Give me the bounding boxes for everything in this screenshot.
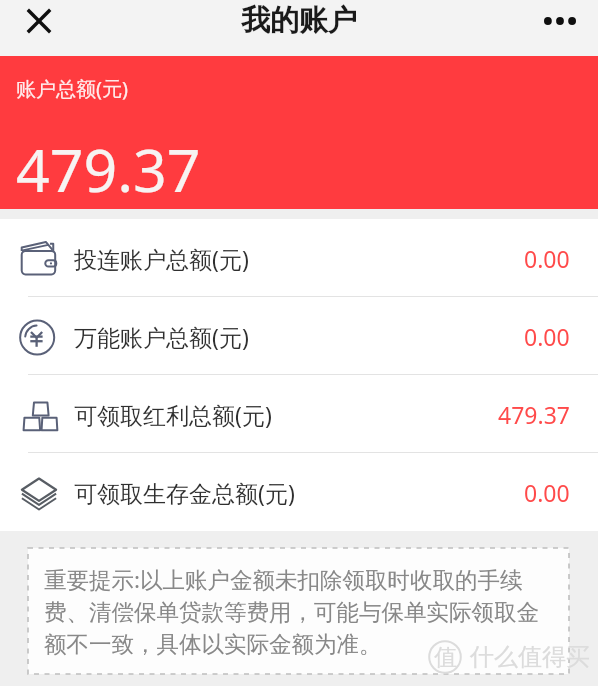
button[interactable]: 可领取生存金总额(元) xyxy=(0,453,598,531)
staticText: 万能账户总额(元) xyxy=(74,321,249,352)
staticText: 可领取红利总额(元) xyxy=(74,399,272,430)
staticText: 可领取生存金总额(元) xyxy=(74,477,295,508)
staticText: 479.37 xyxy=(16,129,201,209)
staticText: 479.37 xyxy=(498,399,570,430)
staticText: 值 xyxy=(434,643,457,672)
staticText: 重要提示:以上账户金额未扣除领取时收取的手续费、清偿保单贷款等费用，可能与保单实… xyxy=(44,564,546,659)
staticText: 我的账户 xyxy=(241,2,357,39)
staticText: 0.00 xyxy=(524,243,570,274)
staticText: 0.00 xyxy=(524,477,570,508)
button[interactable]: Close xyxy=(17,0,60,41)
staticText: 0.00 xyxy=(524,321,570,352)
staticText: 什么值得买 xyxy=(470,642,590,672)
button[interactable]: 投连账户总额(元) xyxy=(0,219,598,297)
staticText: 账户总额(元) xyxy=(16,75,128,102)
staticText: 投连账户总额(元) xyxy=(74,243,249,274)
button[interactable]: More options xyxy=(538,0,581,41)
button[interactable]: 万能账户总额(元) xyxy=(0,297,598,375)
button[interactable]: 可领取红利总额(元) xyxy=(0,375,598,453)
